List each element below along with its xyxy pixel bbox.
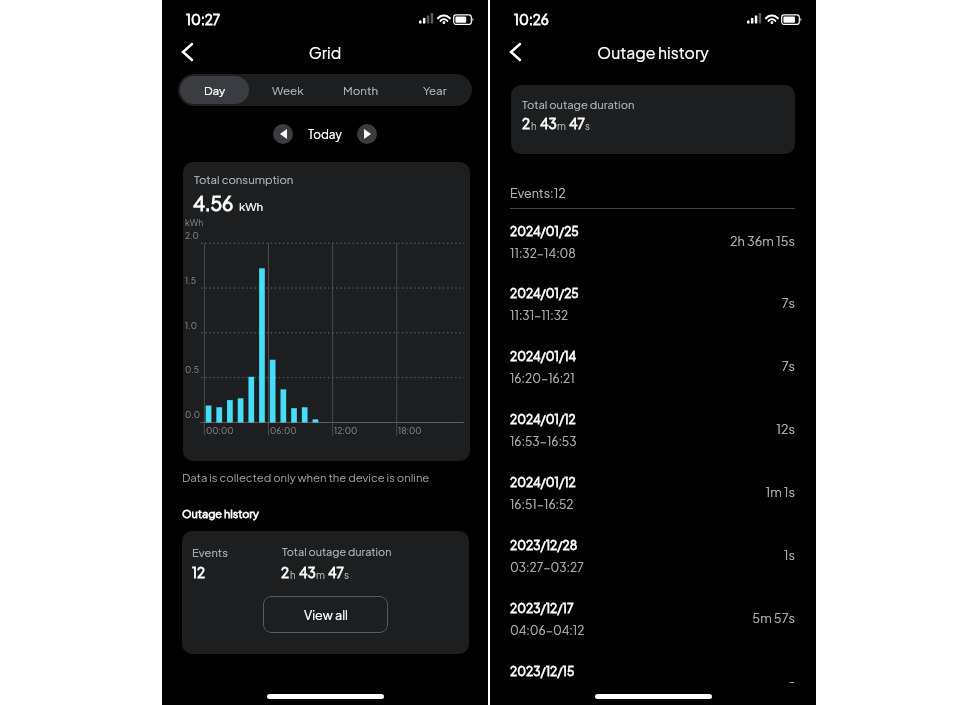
button[interactable]: Back (498, 35, 532, 69)
staticText: 2024/01/12 (510, 475, 576, 490)
button[interactable]: 2024/01/14 (490, 340, 816, 403)
staticText: h (531, 120, 537, 132)
staticText: 5m 57s (752, 610, 795, 626)
staticText: Grid (162, 43, 488, 63)
staticText: kWh (239, 199, 264, 213)
button[interactable]: 2023/12/28 (490, 529, 816, 592)
staticText: Events (192, 545, 228, 559)
staticText: Total consumption (194, 172, 294, 186)
staticText: 06:00 (270, 425, 297, 436)
staticText: 12:00 (334, 425, 358, 436)
staticText: m (316, 569, 325, 581)
button[interactable]: Day (180, 76, 249, 104)
staticText: 47 (328, 564, 344, 581)
staticText: 0.0 (185, 409, 201, 420)
staticText: 1s (783, 547, 795, 563)
staticText: Events:12 (510, 185, 566, 201)
staticText: 2023/12/28 (510, 538, 578, 553)
staticText: 4.56 (193, 191, 234, 215)
staticText: Total outage duration (522, 97, 635, 111)
staticText: 04:06-04:12 (510, 623, 585, 638)
staticText: - (788, 673, 795, 689)
staticText: 2024/01/25 (510, 286, 579, 301)
staticText: 03:27-03:27 (510, 560, 584, 575)
staticText: Month (343, 83, 379, 98)
staticText: Year (423, 83, 447, 98)
staticText: 47 (569, 115, 585, 132)
button[interactable]: Back (170, 35, 204, 69)
staticText: Day (204, 83, 226, 98)
button[interactable]: View all (263, 596, 388, 633)
staticText: 2024/01/12 (510, 412, 576, 427)
staticText: 2.0 (185, 230, 199, 241)
staticText: 10:26 (514, 11, 549, 28)
staticText: 12s (776, 421, 795, 437)
button[interactable]: 2024/01/12 (490, 403, 816, 466)
staticText: h (290, 569, 296, 581)
button[interactable]: 2023/12/17 (490, 592, 816, 655)
staticText: 10:27 (186, 11, 221, 28)
staticText: 1m 1s (765, 484, 795, 500)
staticText: Week (272, 83, 304, 98)
staticText: m (557, 120, 566, 132)
staticText: 1.5 (185, 275, 196, 286)
staticText: 11:31-11:32 (510, 308, 569, 323)
staticText: 16:20-16:21 (510, 371, 575, 386)
staticText: Today (308, 127, 342, 142)
staticText: 2h 36m 15s (730, 233, 795, 249)
button[interactable]: Month (326, 76, 396, 104)
staticText: 18:00 (398, 425, 422, 436)
staticText: 43 (299, 564, 316, 581)
button[interactable]: Year (400, 76, 470, 104)
staticText: 2 (522, 115, 531, 132)
staticText: 2024/01/14 (510, 349, 577, 364)
button[interactable]: Week (253, 76, 322, 104)
staticText: 7s (781, 295, 795, 311)
staticText: Outage history (490, 43, 816, 63)
staticText: 0.5 (185, 364, 200, 375)
button[interactable]: 2024/01/25 (490, 277, 816, 340)
staticText: 2023/12/17 (510, 601, 574, 616)
staticText: Data is collected only when the device i… (182, 470, 430, 484)
button[interactable]: 2023/12/15 (490, 655, 816, 705)
staticText: 12 (192, 564, 206, 581)
staticText: 16:53-16:53 (510, 434, 577, 449)
staticText: 16:51-16:52 (510, 497, 574, 512)
staticText: 11:32-14:08 (510, 246, 576, 261)
staticText: s (344, 569, 349, 581)
staticText: kWh (185, 217, 204, 228)
staticText: 1.0 (185, 320, 197, 331)
staticText: 2 (281, 564, 290, 581)
button[interactable]: 2024/01/25 (490, 215, 816, 278)
button[interactable]: Next day (357, 124, 377, 144)
staticText: 00:00 (206, 425, 234, 436)
staticText: 2023/12/15 (510, 664, 575, 679)
staticText: 2024/01/25 (510, 224, 579, 239)
staticText: Outage history (182, 507, 259, 521)
staticText: View all (304, 607, 348, 623)
button[interactable]: 2024/01/12 (490, 466, 816, 529)
staticText: 43 (540, 115, 557, 132)
button[interactable]: Previous day (273, 124, 293, 144)
staticText: 7s (781, 358, 795, 374)
staticText: Total outage duration (282, 545, 392, 559)
staticText: s (585, 120, 590, 132)
